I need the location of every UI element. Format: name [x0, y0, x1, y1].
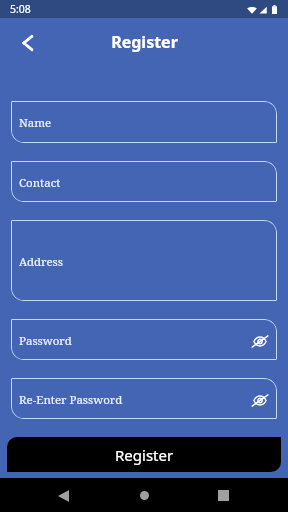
staticText: Register [115, 445, 174, 465]
button[interactable]: Register [7, 437, 281, 472]
button[interactable]: Back [13, 29, 41, 57]
button[interactable]: Toggle password visibility [250, 331, 270, 351]
staticText: Register [111, 31, 178, 53]
button[interactable]: Password [11, 319, 277, 360]
button[interactable]: Back [47, 479, 80, 512]
staticText: Contact [19, 175, 61, 191]
button[interactable]: Toggle password visibility [250, 390, 270, 410]
staticText: 5:08 [10, 2, 31, 16]
button[interactable]: Recents [207, 479, 240, 512]
staticText: Name [19, 115, 52, 131]
staticText: Address [19, 254, 63, 270]
button[interactable]: Contact [11, 161, 277, 202]
staticText: Re-Enter Password [19, 392, 123, 408]
staticText: Password [19, 333, 72, 349]
button[interactable]: Name [11, 101, 277, 143]
button[interactable]: Re-Enter Password [11, 378, 277, 419]
button[interactable]: Home [128, 479, 161, 512]
button[interactable]: Address [11, 220, 277, 301]
